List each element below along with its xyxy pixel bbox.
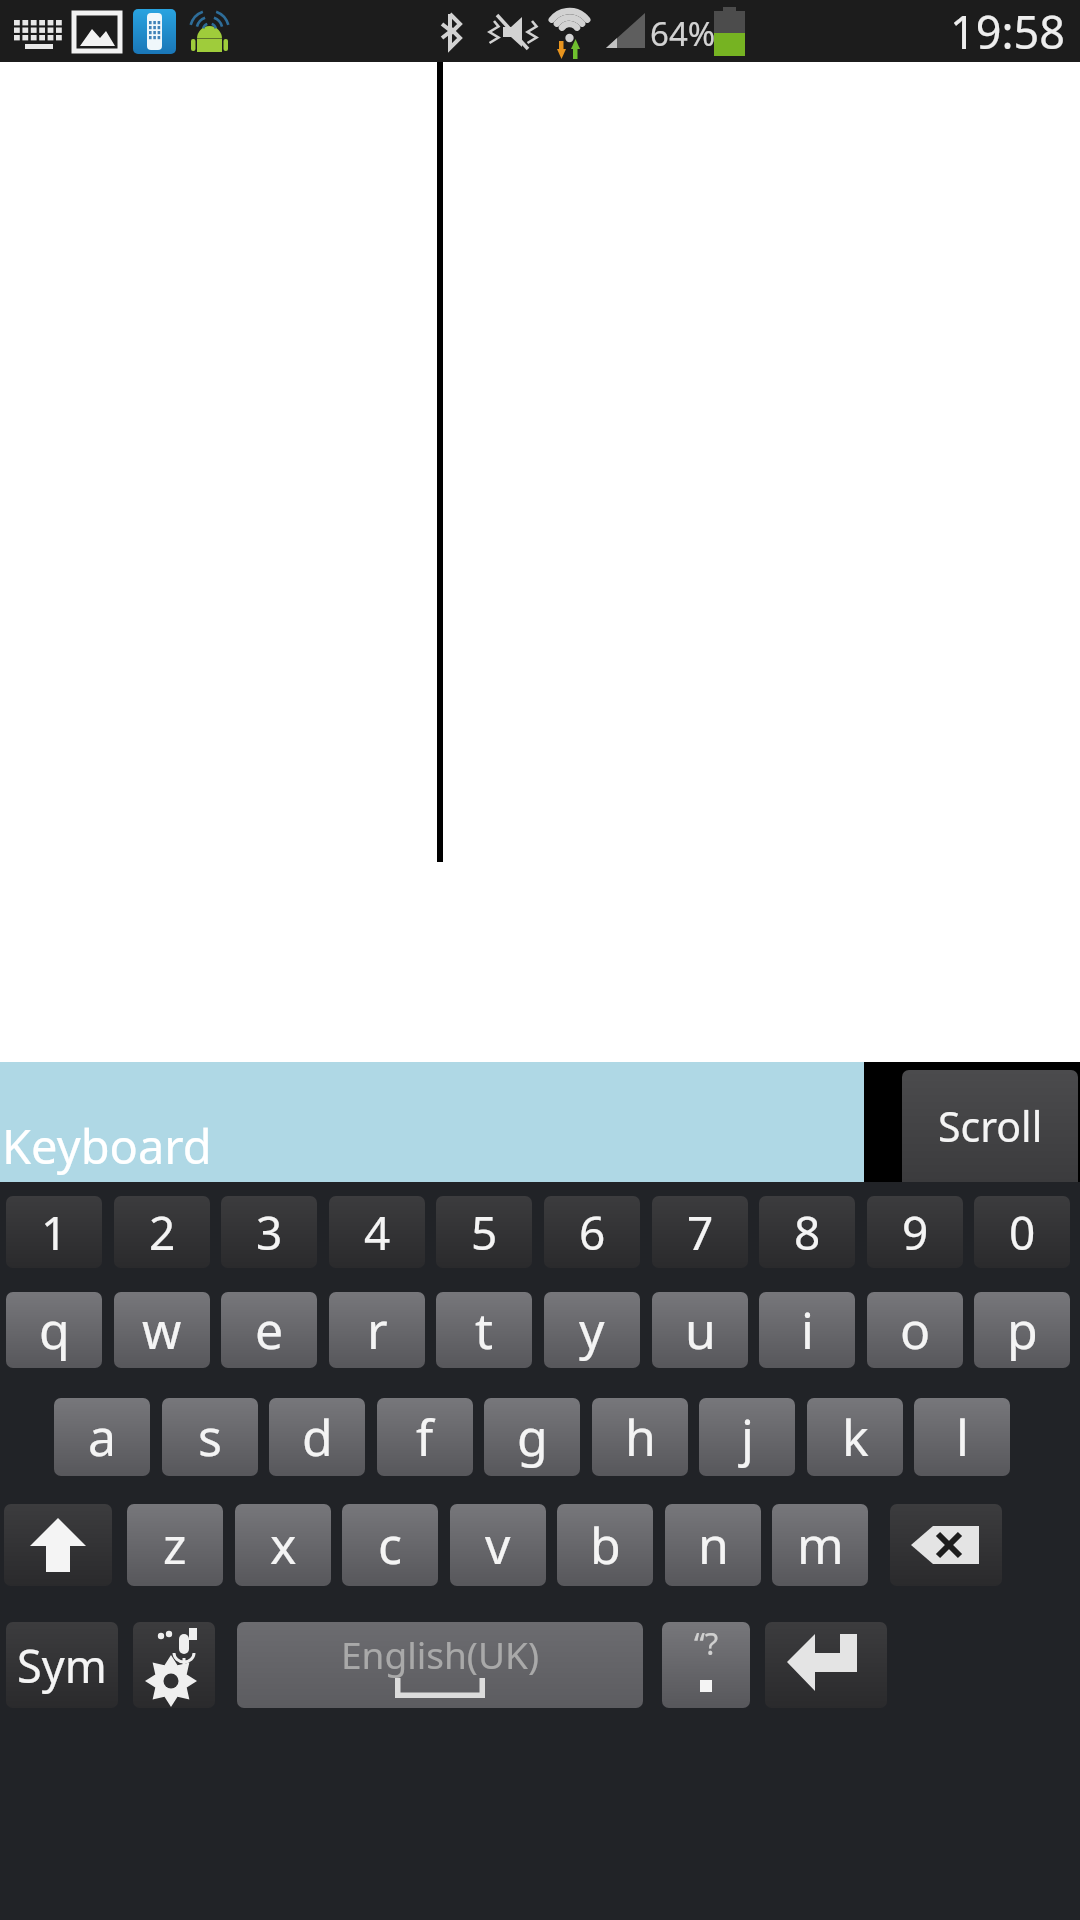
staticText: m <box>797 1511 844 1579</box>
staticText: 3 <box>256 1201 283 1264</box>
staticText: 64% <box>650 11 716 56</box>
staticText: l <box>956 1403 969 1471</box>
button[interactable]: i <box>759 1292 855 1368</box>
button[interactable]: s <box>162 1398 258 1476</box>
staticText: n <box>698 1511 729 1579</box>
button[interactable]: Enter <box>765 1622 887 1708</box>
button[interactable]: d <box>269 1398 365 1476</box>
staticText: 7 <box>687 1201 714 1264</box>
staticText: Scroll <box>938 1098 1043 1154</box>
staticText: w <box>142 1296 182 1364</box>
button[interactable]: Shift <box>4 1504 112 1586</box>
staticText: c <box>378 1511 402 1579</box>
button[interactable]: b <box>557 1504 653 1586</box>
button[interactable]: z <box>127 1504 223 1586</box>
button[interactable]: w <box>114 1292 210 1368</box>
staticText: o <box>900 1296 931 1364</box>
button[interactable]: j <box>699 1398 795 1476</box>
staticText: e <box>255 1296 284 1364</box>
button[interactable]: q <box>6 1292 102 1368</box>
staticText: g <box>517 1403 548 1471</box>
button[interactable]: x <box>235 1504 331 1586</box>
staticText: 9 <box>902 1201 929 1264</box>
staticText: d <box>302 1403 333 1471</box>
button[interactable]: r <box>329 1292 425 1368</box>
staticText: 6 <box>579 1201 606 1264</box>
staticText: 2 <box>149 1201 176 1264</box>
staticText: English(UK) <box>341 1629 540 1679</box>
staticText: t <box>475 1296 494 1364</box>
button[interactable]: Scroll <box>902 1070 1078 1182</box>
staticText: f <box>416 1403 434 1471</box>
button[interactable]: 6 <box>544 1196 640 1268</box>
button[interactable]: Keyboard <box>0 1062 864 1182</box>
staticText: j <box>741 1403 754 1471</box>
button[interactable]: o <box>867 1292 963 1368</box>
button[interactable]: Settings <box>133 1622 215 1708</box>
staticText: q <box>39 1296 70 1364</box>
staticText: v <box>485 1511 511 1579</box>
staticText: u <box>685 1296 716 1364</box>
button[interactable]: m <box>772 1504 868 1586</box>
staticText: k <box>842 1403 869 1471</box>
button[interactable]: Backspace <box>890 1504 1002 1586</box>
button[interactable]: 2 <box>114 1196 210 1268</box>
staticText: z <box>163 1511 187 1579</box>
button[interactable]: c <box>342 1504 438 1586</box>
button[interactable]: 5 <box>436 1196 532 1268</box>
staticText: x <box>270 1511 297 1579</box>
button[interactable]: 8 <box>759 1196 855 1268</box>
button[interactable]: 3 <box>221 1196 317 1268</box>
button[interactable]: Sym <box>6 1622 118 1708</box>
button[interactable]: p <box>974 1292 1070 1368</box>
staticText: p <box>1007 1296 1038 1364</box>
staticText: 1 <box>41 1201 68 1264</box>
button[interactable]: a <box>54 1398 150 1476</box>
button[interactable]: h <box>592 1398 688 1476</box>
staticText: Keyboard <box>2 1114 212 1178</box>
button[interactable]: Period <box>662 1622 750 1708</box>
staticText: i <box>801 1296 814 1364</box>
staticText: y <box>579 1296 605 1364</box>
button[interactable]: English(UK) <box>237 1622 643 1708</box>
staticText: s <box>198 1403 222 1471</box>
button[interactable]: k <box>807 1398 903 1476</box>
staticText: 5 <box>471 1201 498 1264</box>
button[interactable]: u <box>652 1292 748 1368</box>
staticText: r <box>367 1296 388 1364</box>
button[interactable]: f <box>377 1398 473 1476</box>
button[interactable]: 7 <box>652 1196 748 1268</box>
staticText: b <box>590 1511 621 1579</box>
button[interactable]: 0 <box>974 1196 1070 1268</box>
button[interactable]: e <box>221 1292 317 1368</box>
staticText: 0 <box>1009 1201 1036 1264</box>
staticText: Sym <box>17 1635 107 1696</box>
button[interactable]: 4 <box>329 1196 425 1268</box>
staticText: 4 <box>364 1201 391 1264</box>
button[interactable]: 1 <box>6 1196 102 1268</box>
staticText: a <box>88 1403 117 1471</box>
staticText: h <box>625 1403 656 1471</box>
button[interactable]: g <box>484 1398 580 1476</box>
button[interactable]: t <box>436 1292 532 1368</box>
button[interactable]: n <box>665 1504 761 1586</box>
button[interactable]: 9 <box>867 1196 963 1268</box>
button[interactable]: l <box>914 1398 1010 1476</box>
staticText: 8 <box>794 1201 821 1264</box>
button[interactable]: v <box>450 1504 546 1586</box>
staticText: 19:58 <box>950 1 1066 62</box>
staticText: ‘‘? <box>694 1622 719 1664</box>
button[interactable]: y <box>544 1292 640 1368</box>
